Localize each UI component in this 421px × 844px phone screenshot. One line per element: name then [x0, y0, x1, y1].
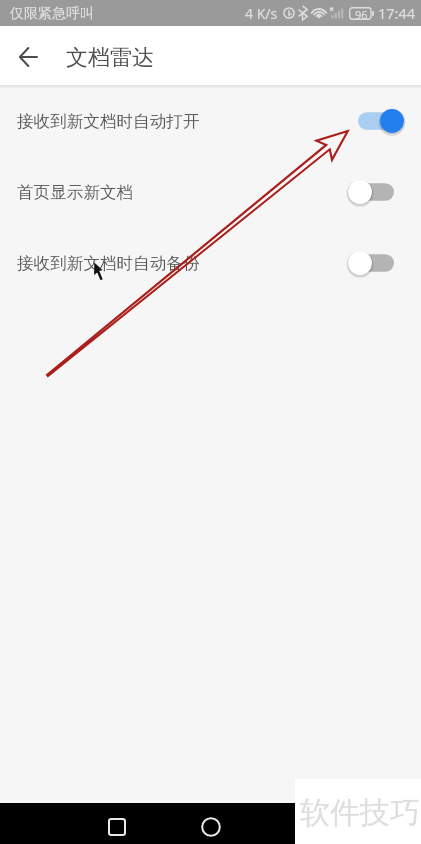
- button[interactable]: 接收到新文档时自动备份: [0, 228, 421, 299]
- staticText: 接收到新文档时自动备份: [17, 253, 200, 274]
- staticText: 4 K/s: [245, 4, 278, 23]
- staticText: 首页显示新文档: [17, 182, 134, 203]
- staticText: 仅限紧急呼叫: [10, 5, 94, 23]
- button[interactable]: 首页显示新文档: [0, 157, 421, 228]
- button[interactable]: 接收到新文档时自动打开: [0, 86, 421, 157]
- button[interactable]: Home: [190, 806, 231, 844]
- staticText: 软件技巧: [300, 794, 420, 832]
- staticText: 96: [355, 7, 368, 20]
- button[interactable]: Back: [4, 32, 52, 80]
- staticText: 接收到新文档时自动打开: [17, 111, 200, 132]
- staticText: 17:44: [378, 3, 416, 23]
- button[interactable]: Recent apps: [96, 806, 137, 844]
- staticText: 文档雷达: [66, 44, 154, 72]
